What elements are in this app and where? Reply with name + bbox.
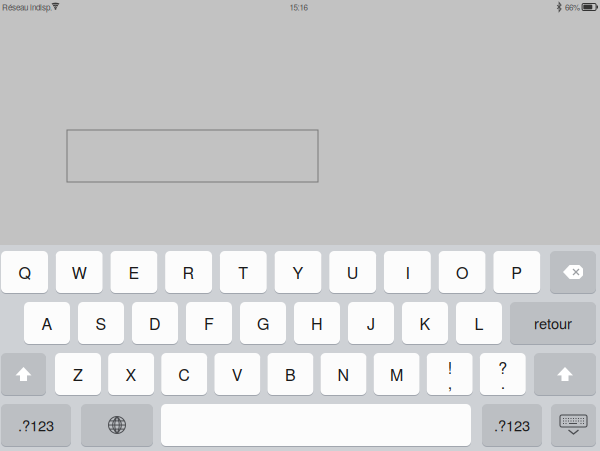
button[interactable]: Shift <box>1 353 46 396</box>
button[interactable]: D <box>132 302 178 345</box>
staticText: O <box>456 260 468 283</box>
staticText: Y <box>292 260 303 283</box>
button[interactable]: Text field <box>67 130 318 182</box>
button[interactable]: X <box>108 353 154 396</box>
staticText: A <box>41 311 52 334</box>
button[interactable]: .?123 <box>482 404 542 447</box>
staticText: H <box>311 311 323 334</box>
staticText: V <box>232 362 243 385</box>
staticText: retour <box>534 312 572 333</box>
staticText: 66% <box>565 1 580 13</box>
button[interactable]: retour <box>510 302 596 345</box>
button[interactable]: V <box>214 353 260 396</box>
staticText: D <box>149 311 161 334</box>
staticText: B <box>285 362 296 385</box>
button[interactable]: E <box>110 251 157 294</box>
staticText: W <box>72 260 87 283</box>
button[interactable]: ! <box>427 353 473 396</box>
staticText: Z <box>73 362 83 385</box>
staticText: U <box>347 260 359 283</box>
button[interactable]: Backspace <box>550 251 596 294</box>
button[interactable]: H <box>294 302 340 345</box>
button[interactable]: N <box>320 353 366 396</box>
staticText: I <box>405 260 409 283</box>
button[interactable]: B <box>267 353 313 396</box>
button[interactable]: I <box>384 251 431 294</box>
staticText: ! <box>448 355 452 378</box>
staticText: G <box>257 311 269 334</box>
button[interactable]: W <box>56 251 103 294</box>
button[interactable]: K <box>402 302 448 345</box>
button[interactable]: G <box>240 302 286 345</box>
staticText: .?123 <box>494 414 530 435</box>
staticText: C <box>178 362 190 385</box>
button[interactable]: O <box>439 251 486 294</box>
staticText: S <box>95 311 106 334</box>
button[interactable]: R <box>165 251 212 294</box>
button[interactable]: S <box>78 302 124 345</box>
button[interactable]: Hide keyboard <box>551 404 596 447</box>
staticText: P <box>511 260 522 283</box>
button[interactable]: Q <box>1 251 48 294</box>
button[interactable]: .?123 <box>1 404 71 447</box>
staticText: ? <box>498 355 507 378</box>
button[interactable]: Shift <box>534 353 596 396</box>
button[interactable]: P <box>493 251 540 294</box>
button[interactable]: Z <box>55 353 101 396</box>
staticText: Q <box>18 260 30 283</box>
staticText: X <box>126 362 137 385</box>
button[interactable]: J <box>348 302 394 345</box>
staticText: K <box>419 311 430 334</box>
button[interactable]: L <box>456 302 502 345</box>
staticText: E <box>128 260 139 283</box>
staticText: R <box>183 260 195 283</box>
button[interactable]: F <box>186 302 232 345</box>
staticText: L <box>474 311 483 334</box>
button[interactable]: A <box>24 302 70 345</box>
staticText: . <box>501 370 505 393</box>
button[interactable]: M <box>374 353 420 396</box>
staticText: Réseau indisp. <box>2 1 52 13</box>
button[interactable]: Next keyboard <box>81 404 153 447</box>
button[interactable]: C <box>161 353 207 396</box>
staticText: J <box>367 311 375 334</box>
staticText: , <box>448 370 452 393</box>
staticText: M <box>390 362 403 385</box>
button[interactable]: U <box>329 251 376 294</box>
staticText: T <box>238 260 248 283</box>
staticText: 15:16 <box>289 1 307 13</box>
staticText: F <box>204 311 214 334</box>
staticText: N <box>337 362 349 385</box>
button[interactable]: T <box>220 251 267 294</box>
button[interactable]: Y <box>274 251 321 294</box>
button[interactable]: Space <box>161 404 471 447</box>
button[interactable]: ? <box>480 353 526 396</box>
staticText: .?123 <box>18 414 54 435</box>
